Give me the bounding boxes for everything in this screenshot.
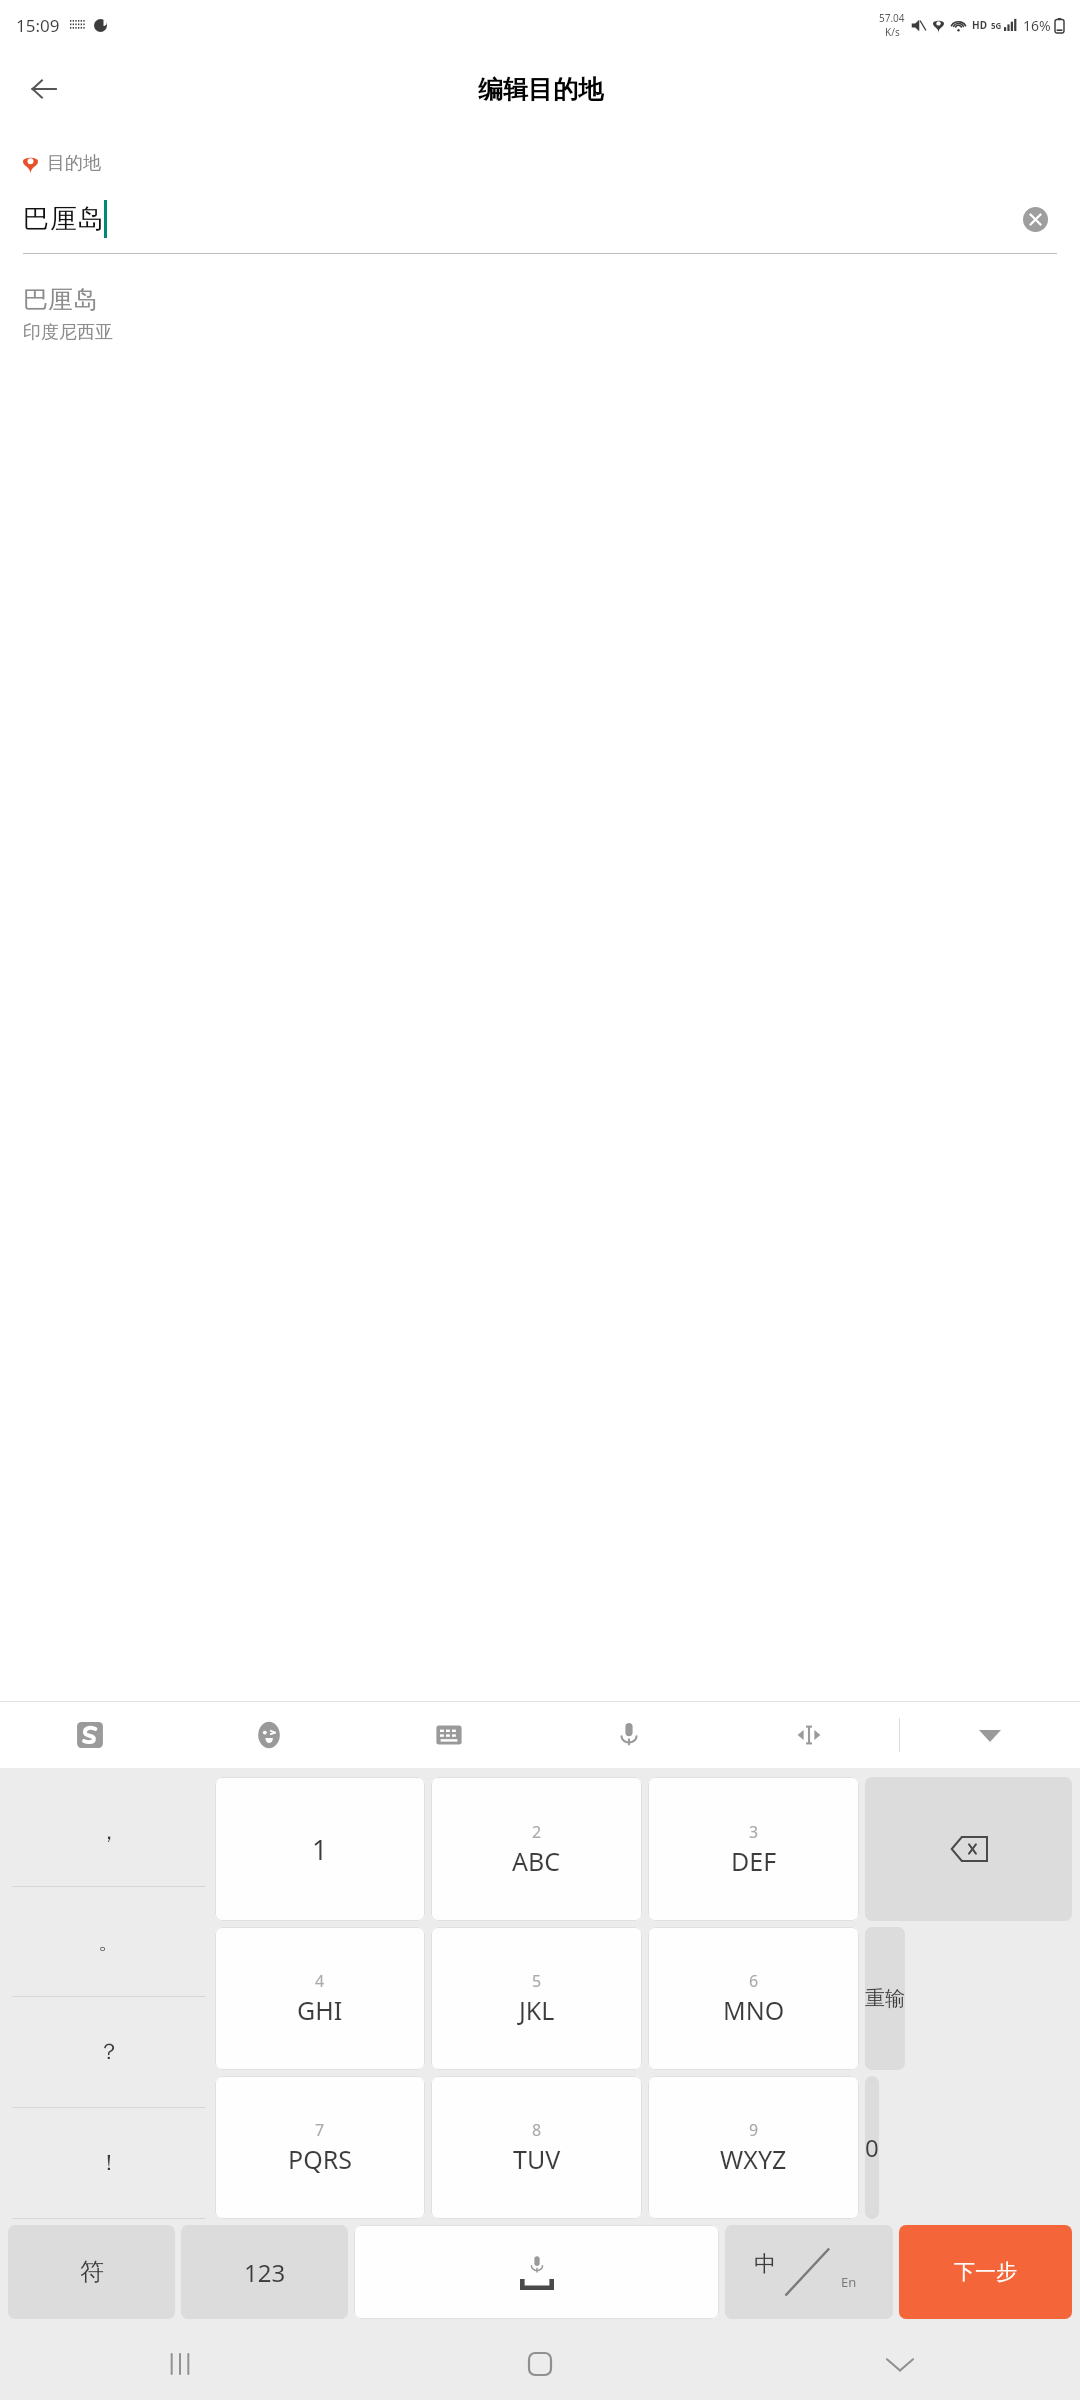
button[interactable]: 符 (8, 2225, 175, 2319)
staticText: 重输 (865, 1986, 905, 2011)
button[interactable]: 7 (215, 2076, 425, 2219)
button[interactable]: 重输 (865, 1927, 905, 2070)
button[interactable]: Recent apps (0, 2328, 360, 2400)
button[interactable]: 3 (648, 1777, 859, 1921)
staticText: 编辑目的地 (478, 74, 603, 105)
staticText: 1 (312, 1831, 328, 1868)
button[interactable]: Back (16, 61, 72, 117)
staticText: 5G (991, 20, 1002, 31)
staticText: 符 (80, 2257, 104, 2287)
staticText: 4 (315, 1970, 325, 1992)
staticText: HD (972, 18, 987, 32)
button[interactable]: 下一步 (899, 2225, 1072, 2319)
button[interactable]: Hide keyboard (720, 2328, 1080, 2400)
staticText: 7 (315, 2119, 325, 2141)
staticText: DEF (731, 1844, 777, 1878)
staticText: ？ (98, 2038, 120, 2066)
button[interactable]: 巴厘岛 (23, 191, 1057, 247)
button[interactable]: Clear text (1013, 197, 1057, 241)
staticText: JKL (519, 1993, 555, 2027)
button[interactable]: Emoji (179, 1702, 359, 1768)
staticText: 123 (244, 2256, 286, 2289)
button[interactable]: 0 (865, 2076, 879, 2219)
staticText: 巴厘岛 (23, 284, 98, 315)
button[interactable]: Home (360, 2328, 720, 2400)
staticText: 3 (749, 1821, 759, 1843)
staticText: ！ (98, 2149, 120, 2177)
staticText: K/s (885, 25, 900, 39)
staticText: 9 (749, 2119, 759, 2141)
button[interactable]: 巴厘岛 (0, 274, 1080, 354)
staticText: 目的地 (47, 152, 101, 175)
button[interactable]: 5 (431, 1927, 642, 2070)
button[interactable]: 9 (648, 2076, 859, 2219)
button[interactable]: Cursor move (719, 1702, 899, 1768)
button[interactable]: Backspace (865, 1777, 1072, 1921)
button[interactable]: 8 (431, 2076, 642, 2219)
staticText: 16% (1023, 16, 1051, 35)
button[interactable]: 123 (181, 2225, 348, 2319)
staticText: GHI (297, 1993, 343, 2027)
button[interactable]: 6 (648, 1927, 859, 2070)
button[interactable]: Space (354, 2225, 719, 2319)
staticText: 2 (532, 1821, 542, 1843)
button[interactable]: Sogou input (0, 1702, 179, 1768)
staticText: ABC (512, 1844, 561, 1878)
button[interactable]: Switch Chinese English (725, 2225, 893, 2319)
staticText: 6 (749, 1970, 759, 1992)
button[interactable]: Keyboard layout (359, 1702, 539, 1768)
button[interactable]: ？ (8, 1997, 209, 2107)
button[interactable]: ！ (8, 2108, 209, 2218)
staticText: 巴厘岛 (23, 202, 104, 236)
staticText: 中 (754, 2250, 776, 2278)
staticText: 。 (98, 1928, 120, 1956)
staticText: WXYZ (720, 2142, 787, 2176)
button[interactable]: 2 (431, 1777, 642, 1921)
staticText: 57.04 (879, 11, 905, 25)
button[interactable]: Voice input (539, 1702, 719, 1768)
staticText: 8 (532, 2119, 542, 2141)
staticText: TUV (513, 2142, 561, 2176)
button[interactable]: 4 (215, 1927, 425, 2070)
button[interactable]: Hide keyboard (900, 1702, 1080, 1768)
staticText: ， (98, 1818, 120, 1846)
staticText: 印度尼西亚 (23, 321, 113, 344)
staticText: En (841, 2273, 857, 2291)
staticText: PQRS (288, 2142, 352, 2176)
staticText: 下一步 (954, 2259, 1017, 2285)
staticText: MNO (723, 1993, 785, 2027)
button[interactable]: 1 (215, 1777, 425, 1921)
staticText: 0 (865, 2131, 879, 2164)
staticText: 15:09 (16, 14, 60, 37)
staticText: 5 (532, 1970, 542, 1992)
